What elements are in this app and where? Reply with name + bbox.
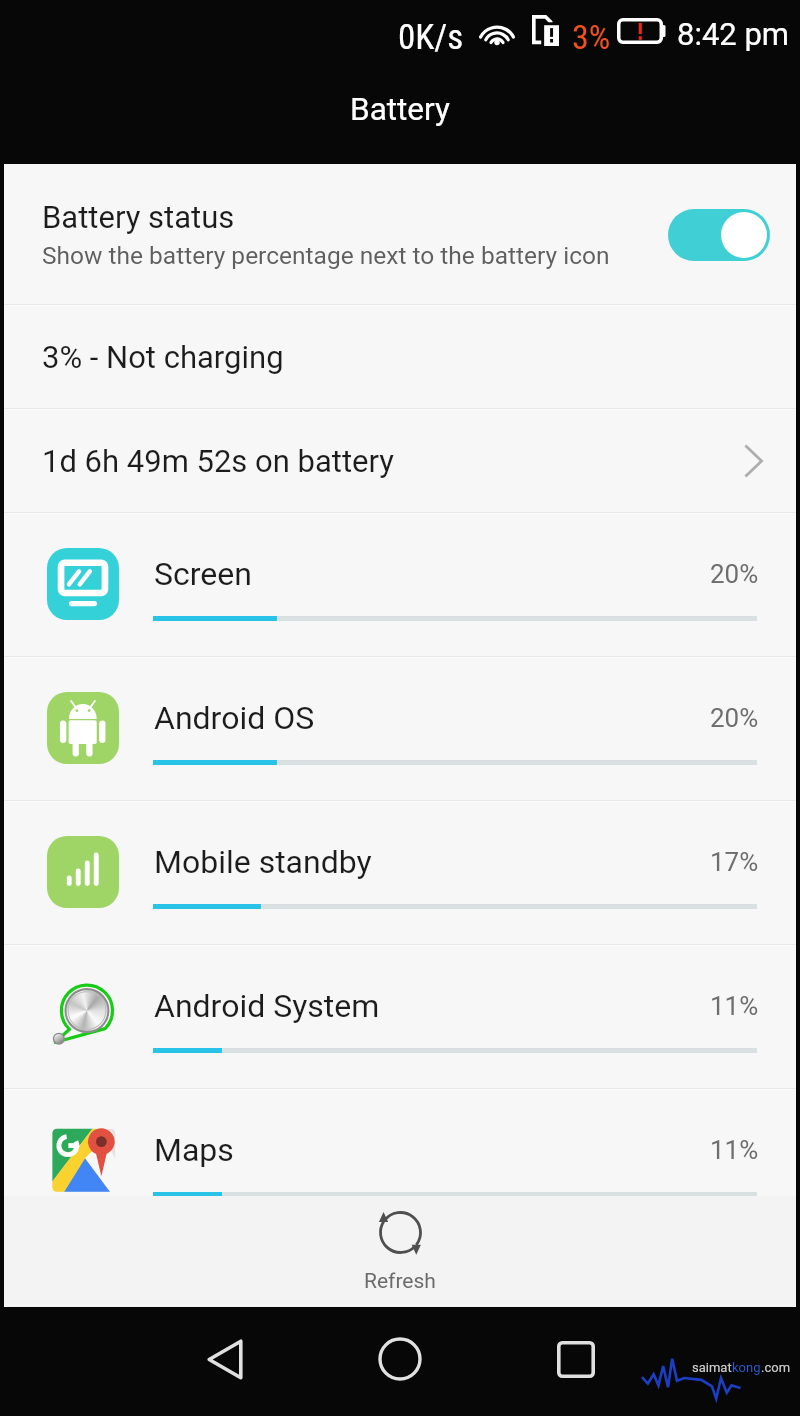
staticText: Battery xyxy=(350,91,450,128)
button[interactable]: Android OS xyxy=(4,657,796,801)
staticText: Screen xyxy=(154,555,252,593)
staticText: kong xyxy=(732,1360,761,1375)
staticText: 20% xyxy=(710,703,759,733)
staticText: Android OS xyxy=(154,699,315,737)
button[interactable]: Battery percentage toggle xyxy=(668,209,770,261)
staticText: Android System xyxy=(154,987,380,1025)
button[interactable]: 1d 6h 49m 52s on battery xyxy=(4,409,796,513)
staticText: Maps xyxy=(154,1131,234,1169)
staticText: Show the battery percentage next to the … xyxy=(42,241,610,270)
staticText: 1d 6h 49m 52s on battery xyxy=(42,443,752,479)
staticText: saimat xyxy=(692,1360,732,1375)
staticText: 3% xyxy=(572,17,611,57)
button[interactable]: Battery status xyxy=(4,164,796,305)
button[interactable]: Screen xyxy=(4,513,796,657)
staticText: 0K/s xyxy=(398,17,464,58)
button[interactable]: Recents xyxy=(488,1316,664,1402)
staticText: 3% - Not charging xyxy=(42,339,284,375)
button[interactable]: 3% - Not charging xyxy=(4,305,796,409)
staticText: 17% xyxy=(710,847,759,877)
staticText: 11% xyxy=(710,1135,759,1165)
button[interactable]: Back xyxy=(136,1316,312,1402)
staticText: Battery status xyxy=(42,199,235,235)
button[interactable]: Maps xyxy=(4,1089,796,1233)
button[interactable]: Refresh xyxy=(4,1196,796,1307)
button[interactable]: Mobile standby xyxy=(4,801,796,945)
staticText: Mobile standby xyxy=(154,843,372,881)
staticText: .com xyxy=(761,1360,791,1375)
button[interactable]: Home xyxy=(312,1316,488,1402)
button[interactable]: Android System xyxy=(4,945,796,1089)
staticText: Refresh xyxy=(364,1269,436,1294)
staticText: 11% xyxy=(710,991,759,1021)
staticText: 20% xyxy=(710,559,759,589)
staticText: 8:42 pm xyxy=(677,16,790,52)
